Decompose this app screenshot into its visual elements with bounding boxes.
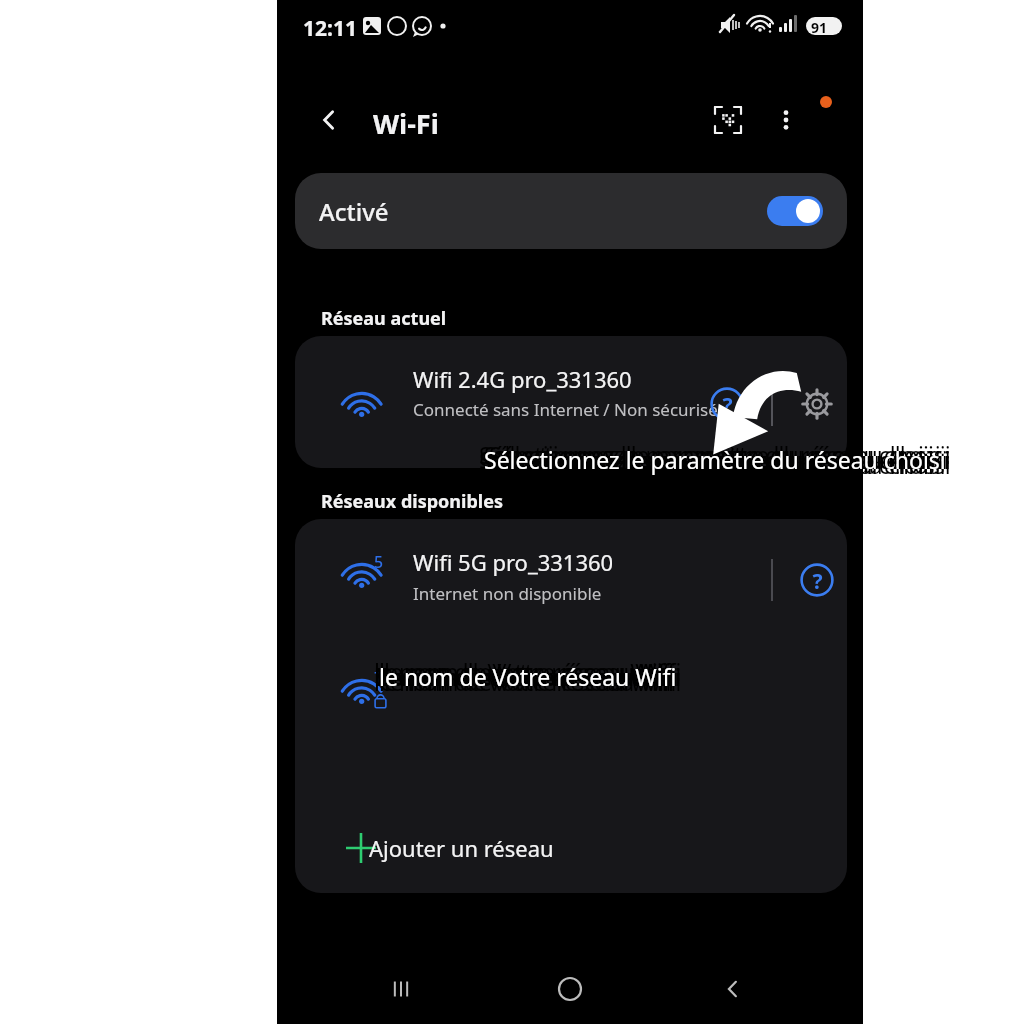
button[interactable]: Scan QR code	[704, 96, 752, 144]
staticText: le nom de Votre réseau Wifi	[374, 666, 672, 697]
staticText: le nom de Votre réseau Wifi	[384, 656, 682, 687]
staticText: le nom de Votre réseau Wifi	[381, 661, 679, 692]
staticText: Internet non disponible	[413, 582, 602, 605]
staticText: Wifi 5G pro_331360	[413, 547, 614, 577]
button[interactable]: Recents	[377, 965, 425, 1013]
staticText: Activé	[319, 195, 389, 228]
staticText: Sélectionnez le paramètre du réseau choi…	[489, 449, 951, 480]
staticText: le nom de Votre réseau Wifi	[383, 661, 681, 692]
staticText: Connecté sans Internet / Non sécurisé	[413, 398, 718, 421]
staticText: 5	[374, 551, 384, 573]
staticText: le nom de Votre réseau Wifi	[375, 661, 673, 692]
staticText: ?	[722, 390, 733, 419]
button[interactable]: More options	[762, 96, 810, 144]
staticText: Sélectionnez le paramètre du réseau choi…	[484, 449, 946, 480]
staticText: le nom de Votre réseau Wifi	[384, 666, 682, 697]
staticText: le nom de Votre réseau Wifi	[384, 661, 682, 692]
staticText: Wifi 2.4G pro_331360	[413, 364, 632, 394]
staticText: Sélectionnez le paramètre du réseau choi…	[484, 444, 946, 475]
button[interactable]: Network information	[791, 554, 843, 606]
button[interactable]: Home	[546, 965, 594, 1013]
staticText: Ajouter un réseau	[369, 833, 554, 863]
staticText: le nom de Votre réseau Wifi	[379, 666, 677, 697]
staticText: Wi-Fi	[373, 105, 439, 142]
staticText: Sélectionnez le paramètre du réseau choi…	[480, 444, 942, 475]
staticText: Sélectionnez le paramètre du réseau choi…	[484, 439, 946, 470]
button[interactable]: 5	[295, 525, 847, 625]
staticText: ?	[812, 566, 823, 595]
staticText: le nom de Votre réseau Wifi	[374, 661, 672, 692]
button[interactable]: Network information	[701, 378, 753, 430]
staticText: Sélectionnez le paramètre du réseau choi…	[486, 444, 948, 475]
staticText: 7	[374, 667, 384, 689]
button[interactable]: Wifi 2.4G pro_331360	[295, 336, 847, 468]
staticText: le nom de Votre réseau Wifi	[379, 656, 677, 687]
staticText: le nom de Votre réseau Wifi	[379, 661, 677, 692]
button[interactable]: Network settings	[791, 378, 843, 430]
button[interactable]: Activé	[295, 173, 847, 249]
button[interactable]: Ajouter un réseau	[295, 809, 847, 887]
staticText: le nom de Votre réseau Wifi	[374, 656, 672, 687]
staticText: Sélectionnez le paramètre du réseau choi…	[482, 444, 944, 475]
staticText: Sélectionnez le paramètre du réseau choi…	[479, 439, 941, 470]
staticText: 91	[811, 18, 828, 37]
button[interactable]: Back	[709, 965, 757, 1013]
button[interactable]: Back	[305, 96, 353, 144]
staticText: le nom de Votre réseau Wifi	[377, 661, 675, 692]
staticText: Réseau actuel	[321, 306, 447, 331]
staticText: Sélectionnez le paramètre du réseau choi…	[488, 444, 950, 475]
staticText: 12:11	[303, 14, 357, 43]
staticText: Sélectionnez le paramètre du réseau choi…	[489, 444, 951, 475]
staticText: Réseaux disponibles	[321, 489, 503, 514]
staticText: Sélectionnez le paramètre du réseau choi…	[479, 444, 941, 475]
staticText: Sélectionnez le paramètre du réseau choi…	[489, 439, 951, 470]
button[interactable]: 7	[295, 643, 847, 739]
staticText: Sélectionnez le paramètre du réseau choi…	[479, 449, 941, 480]
